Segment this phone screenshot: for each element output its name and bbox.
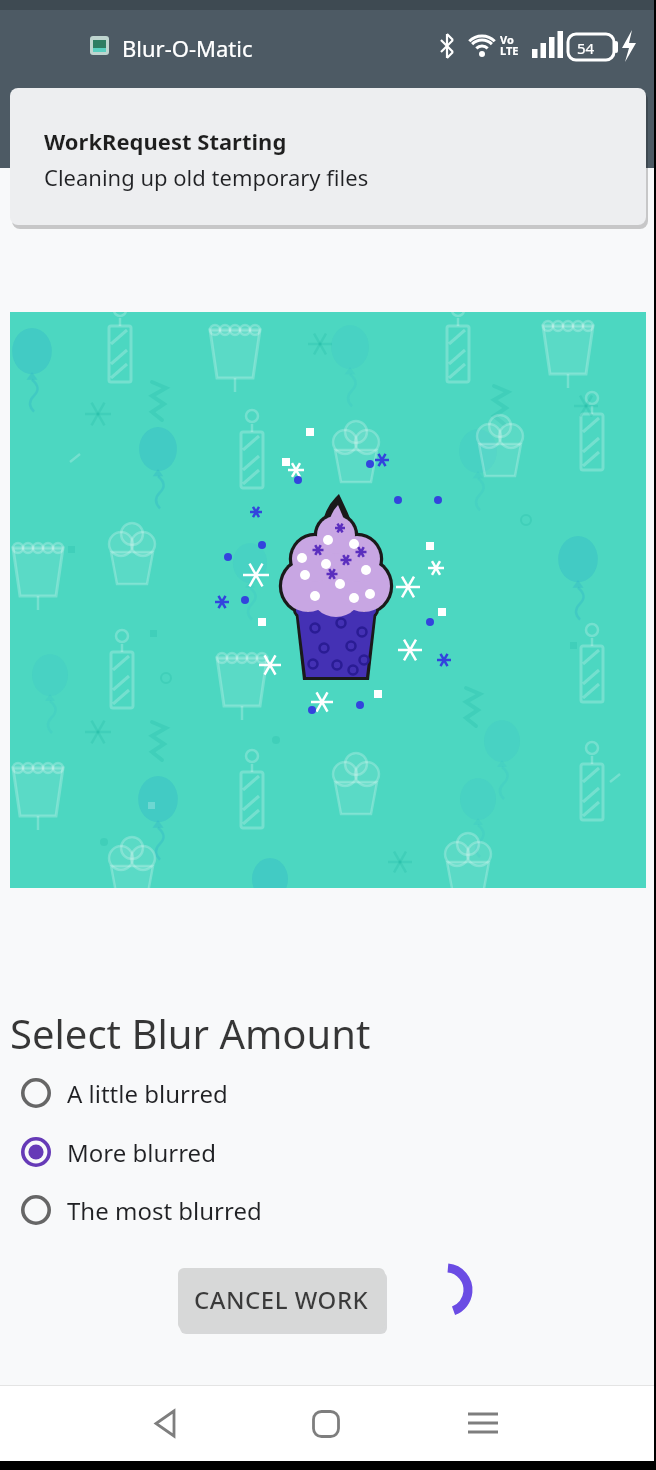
staticText: CANCEL WORK <box>194 1283 369 1316</box>
staticText: 54 <box>577 38 595 58</box>
button[interactable]: More blurred <box>20 1130 216 1174</box>
staticText: Vo LTE <box>500 32 519 58</box>
button[interactable] <box>282 1385 370 1462</box>
button[interactable] <box>439 1385 527 1462</box>
staticText: More blurred <box>67 1136 216 1169</box>
button[interactable] <box>124 1385 212 1462</box>
button[interactable]: CANCEL WORK <box>178 1268 385 1330</box>
staticText: Select Blur Amount <box>10 1006 371 1060</box>
staticText: Blur-O-Matic <box>122 33 253 63</box>
staticText: Cleaning up old temporary files <box>44 162 369 192</box>
staticText: WorkRequest Starting <box>44 126 287 156</box>
staticText: A little blurred <box>67 1077 228 1110</box>
button[interactable]: A little blurred <box>20 1071 228 1115</box>
button[interactable]: The most blurred <box>20 1188 262 1232</box>
staticText: The most blurred <box>67 1194 262 1227</box>
button[interactable]: WorkRequest Starting <box>10 88 646 225</box>
